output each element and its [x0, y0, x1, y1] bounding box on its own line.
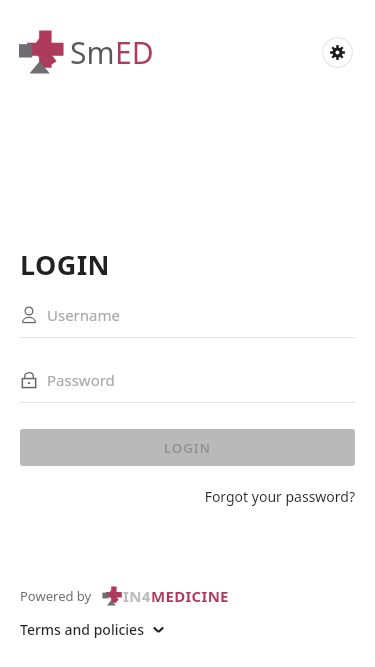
staticText: Forgot your password?	[204, 487, 355, 506]
button[interactable]: Password	[0, 370, 375, 403]
staticText: IN4	[123, 586, 151, 606]
staticText: Sm	[70, 32, 115, 73]
staticText: Terms and policies	[20, 620, 144, 639]
staticText: Powered by	[20, 587, 92, 605]
button[interactable]: LOGIN	[20, 429, 355, 466]
staticText: MEDICINE	[151, 586, 229, 606]
button[interactable]: Forgot your password?	[202, 485, 357, 508]
staticText: LOGIN	[164, 439, 212, 457]
button[interactable]: Terms and policies	[0, 618, 185, 641]
staticText: Password	[47, 370, 115, 390]
staticText: ED	[115, 32, 154, 73]
button[interactable]: Settings	[322, 37, 353, 68]
button[interactable]: Username	[0, 305, 375, 338]
staticText: LOGIN	[20, 246, 110, 283]
staticText: Username	[47, 305, 120, 325]
